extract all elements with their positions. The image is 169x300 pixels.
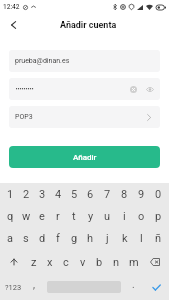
staticText: a xyxy=(7,232,13,245)
button[interactable]: Clear text xyxy=(127,83,140,96)
button[interactable]: Back xyxy=(5,16,22,33)
button[interactable]: r xyxy=(50,205,66,227)
button[interactable]: , xyxy=(21,274,47,300)
staticText: 4 xyxy=(55,188,62,201)
staticText: p xyxy=(155,210,162,223)
button[interactable]: Shift xyxy=(2,250,26,274)
button[interactable]: s xyxy=(18,227,34,250)
staticText: 3 xyxy=(39,188,46,201)
staticText: q xyxy=(7,210,14,223)
staticText: s xyxy=(23,232,29,245)
button[interactable]: prueba@dinan.es xyxy=(9,50,160,72)
staticText: u xyxy=(104,210,111,223)
button[interactable]: p xyxy=(150,205,167,227)
staticText: f xyxy=(56,232,60,245)
staticText: g xyxy=(71,232,78,245)
button[interactable]: u xyxy=(99,205,116,227)
button[interactable]: Enter xyxy=(145,274,167,300)
button[interactable]: y xyxy=(82,205,99,227)
button[interactable]: w xyxy=(18,205,34,227)
button[interactable]: ñ xyxy=(150,227,167,250)
button[interactable]: 6 xyxy=(82,183,99,205)
button[interactable]: l xyxy=(133,227,150,250)
button[interactable]: a xyxy=(2,227,18,250)
button[interactable]: d xyxy=(34,227,50,250)
staticText: t xyxy=(72,210,76,223)
button[interactable]: 0 xyxy=(150,183,167,205)
staticText: l xyxy=(140,232,143,245)
staticText: m xyxy=(129,256,139,269)
staticText: r xyxy=(56,210,60,223)
staticText: 6 xyxy=(87,188,94,201)
staticText: v xyxy=(80,256,86,269)
staticText: h xyxy=(87,232,94,245)
staticText: c xyxy=(63,256,69,269)
staticText: ñ xyxy=(155,232,162,245)
button[interactable]: f xyxy=(50,227,66,250)
staticText: prueba@dinan.es xyxy=(15,57,70,65)
button[interactable]: POP3 xyxy=(9,106,160,128)
button[interactable]: g xyxy=(66,227,82,250)
button[interactable]: t xyxy=(66,205,82,227)
button[interactable]: 1 xyxy=(2,183,18,205)
staticText: n xyxy=(113,256,120,269)
staticText: x xyxy=(47,256,53,269)
button[interactable]: 2 xyxy=(18,183,34,205)
button[interactable]: j xyxy=(99,227,116,250)
button[interactable]: q xyxy=(2,205,18,227)
button[interactable]: o xyxy=(133,205,150,227)
staticText: b xyxy=(96,256,103,269)
staticText: 5 xyxy=(71,188,78,201)
staticText: Añadir xyxy=(73,153,97,162)
button[interactable]: . xyxy=(121,274,145,300)
staticText: ?123 xyxy=(5,283,22,292)
staticText: o xyxy=(138,210,145,223)
button[interactable]: Backspace xyxy=(142,250,167,274)
button[interactable]: i xyxy=(116,205,133,227)
staticText: 8 xyxy=(121,188,128,201)
staticText: . xyxy=(132,279,135,291)
staticText: , xyxy=(33,279,35,291)
button[interactable]: 5 xyxy=(66,183,82,205)
button[interactable]: 7 xyxy=(99,183,116,205)
button[interactable]: v xyxy=(74,250,91,274)
staticText: z xyxy=(31,256,37,269)
button[interactable]: e xyxy=(34,205,50,227)
button[interactable]: b xyxy=(91,250,108,274)
staticText: e xyxy=(39,210,45,223)
button[interactable]: Show password xyxy=(143,83,156,96)
staticText: y xyxy=(88,210,94,223)
button[interactable]: 9 xyxy=(133,183,150,205)
button[interactable]: h xyxy=(82,227,99,250)
staticText: 12:42 xyxy=(3,3,20,11)
button[interactable]: n xyxy=(108,250,125,274)
staticText: 0 xyxy=(155,188,162,201)
button[interactable]: c xyxy=(58,250,74,274)
button[interactable]: z xyxy=(26,250,42,274)
staticText: 1 xyxy=(7,188,14,201)
staticText: i xyxy=(123,210,126,223)
staticText: d xyxy=(39,232,46,245)
button[interactable]: Añadir xyxy=(9,146,160,168)
staticText: POP3 xyxy=(15,113,33,121)
button[interactable]: 8 xyxy=(116,183,133,205)
button[interactable]: x xyxy=(42,250,58,274)
staticText: j xyxy=(106,232,109,245)
staticText: 2 xyxy=(23,188,30,201)
staticText: Añadir cuenta xyxy=(60,20,117,31)
staticText: 9 xyxy=(138,188,145,201)
button[interactable]: 4 xyxy=(50,183,66,205)
button[interactable]: k xyxy=(116,227,133,250)
button[interactable]: 3 xyxy=(34,183,50,205)
staticText: w xyxy=(22,210,31,223)
button[interactable]: m xyxy=(125,250,142,274)
button[interactable]: Clear text xyxy=(9,78,160,100)
staticText: 7 xyxy=(104,188,111,201)
staticText: k xyxy=(122,232,128,245)
button[interactable]: ?123 xyxy=(2,274,21,300)
